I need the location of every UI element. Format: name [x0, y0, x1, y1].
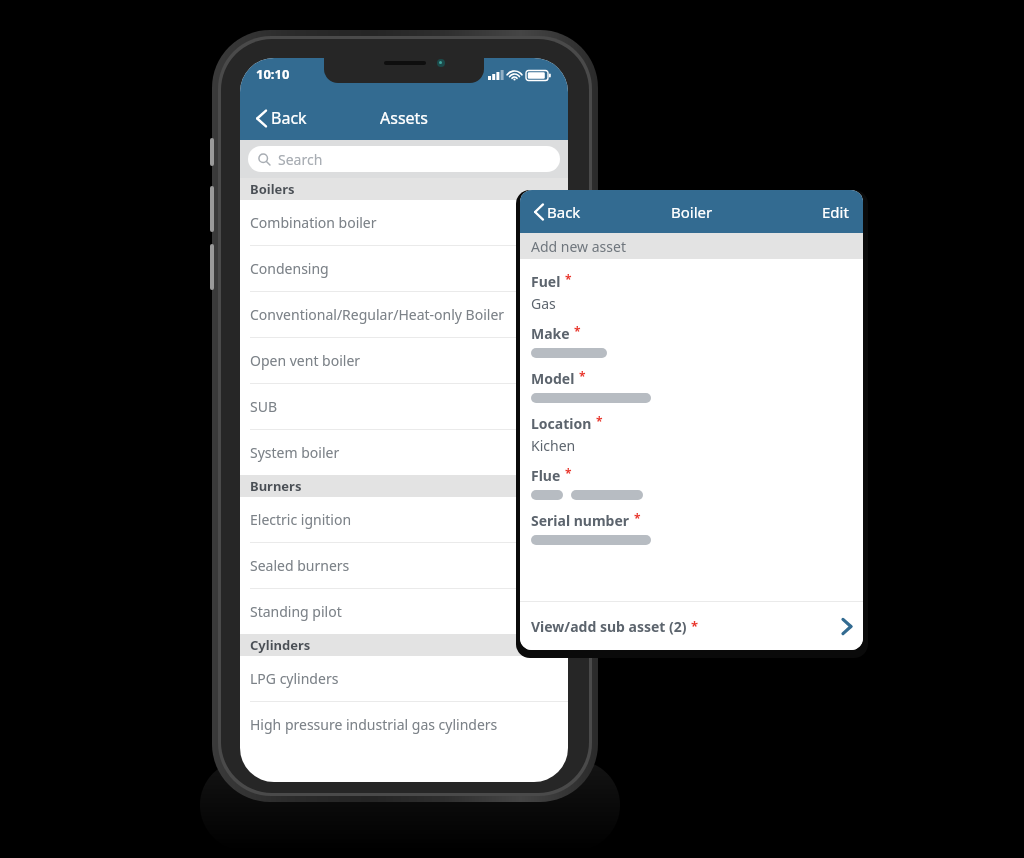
staticText: System boiler — [250, 443, 340, 462]
button[interactable]: Condensing — [240, 246, 568, 291]
staticText: Boilers — [250, 180, 295, 198]
staticText: 10:10 — [256, 65, 290, 83]
staticText: Flue — [531, 466, 561, 485]
staticText: Conventional/Regular/Heat-only Boiler — [250, 305, 505, 324]
button[interactable]: High pressure industrial gas cylinders — [240, 702, 568, 747]
button[interactable]: Sealed burners — [240, 543, 568, 588]
staticText: Combination boiler — [250, 213, 377, 232]
staticText: Kichen — [531, 436, 576, 455]
staticText: Condensing — [250, 259, 329, 278]
staticText: Standing pilot — [250, 602, 342, 621]
button[interactable]: Edit — [818, 198, 853, 226]
staticText: * — [691, 617, 699, 635]
button[interactable]: Open vent boiler — [240, 338, 568, 383]
button[interactable]: Combination boiler — [240, 200, 568, 245]
other: Open sub assets — [843, 618, 852, 635]
staticText: Burners — [250, 477, 302, 495]
staticText: LPG cylinders — [250, 669, 339, 688]
staticText: Back — [271, 107, 307, 129]
staticText: SUB — [250, 397, 278, 416]
staticText: * — [596, 413, 603, 429]
staticText: Cylinders — [250, 636, 311, 654]
button[interactable]: Conventional/Regular/Heat-only Boiler — [240, 292, 568, 337]
staticText: Electric ignition — [250, 510, 352, 529]
staticText: Fuel — [531, 272, 561, 291]
button[interactable]: System boiler — [240, 430, 568, 475]
staticText: Search — [278, 150, 323, 169]
staticText: * — [565, 465, 572, 481]
staticText: Edit — [822, 202, 849, 222]
staticText: * — [634, 510, 641, 526]
button[interactable]: LPG cylinders — [240, 656, 568, 701]
staticText: High pressure industrial gas cylinders — [250, 715, 498, 734]
staticText: Model — [531, 369, 575, 388]
button[interactable]: Standing pilot — [240, 589, 568, 634]
staticText: Add new asset — [531, 237, 626, 256]
button[interactable]: Search — [248, 146, 560, 172]
button[interactable]: Back — [531, 196, 584, 228]
button[interactable]: View/add sub asset (2) — [520, 602, 863, 650]
staticText: Back — [547, 202, 581, 222]
button[interactable]: Electric ignition — [240, 497, 568, 542]
staticText: Assets — [380, 107, 429, 129]
button[interactable]: Back — [252, 101, 311, 135]
staticText: Boiler — [671, 202, 713, 222]
staticText: Gas — [531, 294, 556, 313]
staticText: Make — [531, 324, 570, 343]
button[interactable]: SUB — [240, 384, 568, 429]
staticText: Open vent boiler — [250, 351, 361, 370]
staticText: Serial number — [531, 511, 630, 530]
staticText: * — [579, 368, 586, 384]
staticText: * — [574, 323, 581, 339]
staticText: * — [565, 271, 572, 287]
staticText: Sealed burners — [250, 556, 350, 575]
staticText: Location — [531, 414, 592, 433]
staticText: View/add sub asset (2) — [531, 617, 691, 636]
